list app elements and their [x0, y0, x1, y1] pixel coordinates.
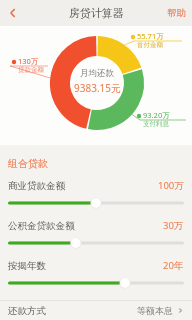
staticText: 100万	[158, 179, 184, 192]
staticText: 等额本息	[137, 305, 173, 316]
staticText: 20年	[163, 259, 184, 272]
staticText: 9383.15元	[74, 81, 121, 95]
staticText: 房贷计算器	[69, 6, 124, 20]
button[interactable]: Back	[0, 0, 26, 26]
staticText: 按揭年数	[8, 260, 46, 272]
button[interactable]	[0, 237, 192, 249]
staticText: 首付金额	[137, 41, 163, 49]
staticText: 93.20万	[143, 110, 170, 120]
button[interactable]: 帮助	[161, 3, 192, 23]
staticText: 支付利息	[143, 120, 169, 128]
button[interactable]	[0, 277, 192, 289]
staticText: 55.71万	[137, 31, 164, 41]
staticText: 组合贷款	[8, 157, 48, 170]
staticText: 30万	[163, 219, 184, 232]
button[interactable]	[0, 197, 192, 209]
staticText: 贷款金额	[18, 66, 44, 74]
button[interactable]: 还款方式	[0, 301, 192, 320]
staticText: 还款方式	[8, 305, 46, 317]
staticText: 130万	[18, 56, 39, 66]
staticText: 月均还款	[80, 68, 114, 79]
staticText: 帮助	[167, 7, 186, 19]
staticText: 公积金贷款金额	[8, 220, 75, 232]
staticText: 商业贷款金额	[8, 180, 65, 192]
